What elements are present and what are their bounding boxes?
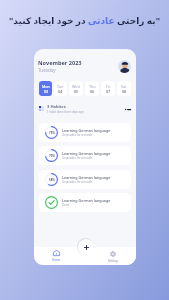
button[interactable]: Thu [85,81,99,96]
button[interactable]: Tue [54,81,67,96]
button[interactable]: List view [125,107,131,112]
staticText: Sat [121,84,127,89]
staticText: Home [52,258,61,262]
button[interactable]: Fri [101,81,115,96]
button[interactable]: 58% [39,170,131,189]
button[interactable]: Wed [69,81,83,96]
staticText: Tue [57,84,64,89]
staticText: 70% [49,154,55,158]
staticText: Wed [72,84,80,89]
staticText: 04 [58,89,63,94]
staticText: 4 episodes for a month [62,180,93,184]
staticText: Learning German language [62,198,111,203]
button[interactable]: Learning German language [39,193,131,212]
button[interactable]: Profile [118,60,131,73]
staticText: 3 Habites [47,104,66,110]
button[interactable]: Home [51,250,61,262]
staticText: Fri [106,84,111,89]
staticText: Setting [108,259,118,263]
button[interactable]: 70% [39,146,131,165]
staticText: 4 episodes for a month [62,156,93,160]
button[interactable]: Sat [117,81,131,96]
staticText: Mon [42,84,50,89]
staticText: Learning German language [62,175,111,180]
staticText: Tuesday [38,67,56,73]
staticText: Learning German language [62,128,111,133]
staticText: Thu [89,84,96,89]
staticText: 58% [49,178,55,182]
staticText: 75% [49,131,55,135]
button[interactable]: Mon [39,81,52,96]
staticText: Learning German language [62,151,111,156]
staticText: 06 [90,89,95,94]
staticText: 1 habit done three days ago [47,110,84,114]
button[interactable]: 75% [39,123,131,142]
staticText: 03 [44,89,49,94]
staticText: November 2023 [38,59,82,67]
staticText: 07 [106,89,111,94]
button[interactable]: Add habit [78,239,94,255]
staticText: 4 episodes for a month [62,133,93,137]
staticText: 08 [122,89,127,94]
staticText: 05 [74,89,79,94]
staticText: "به راحتی عادتی در خود ایجاد کنید" [9,14,160,26]
button[interactable]: Setting [108,251,118,263]
staticText: Done [62,203,70,207]
